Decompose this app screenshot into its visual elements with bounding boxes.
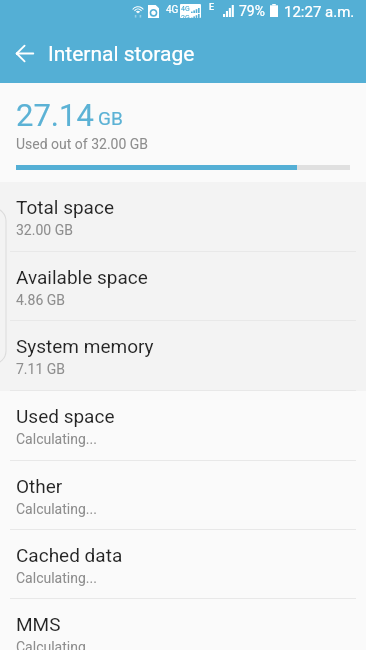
staticText: Total space (16, 196, 114, 218)
staticText: Calculating... (16, 570, 97, 586)
staticText: 2G (181, 14, 190, 18)
staticText: Other (16, 475, 63, 497)
button[interactable]: Used space (0, 391, 366, 461)
button[interactable]: Other (0, 461, 366, 530)
staticText: Cached data (16, 544, 123, 566)
button[interactable]: Total space (0, 182, 366, 252)
staticText: 7.11 GB (16, 361, 66, 377)
staticText: 4G (166, 4, 179, 16)
staticText: Used space (16, 405, 115, 427)
staticText: System memory (16, 335, 154, 357)
button[interactable]: Available space (0, 252, 366, 321)
staticText: 32.00 GB (16, 222, 73, 238)
staticText: Calculating... (16, 501, 97, 517)
staticText: Available space (16, 266, 148, 288)
staticText: 79% (239, 3, 265, 19)
staticText: 12:27 a.m. (284, 3, 355, 21)
staticText: Internal storage (48, 42, 195, 67)
staticText: E (209, 2, 215, 13)
staticText: 4G (181, 5, 190, 13)
button[interactable]: Navigate up (9, 37, 41, 69)
staticText: 4.86 GB (16, 292, 66, 308)
staticText: Calculating... (16, 639, 97, 650)
staticText: Used out of 32.00 GB (16, 136, 149, 152)
staticText: Calculating... (16, 431, 97, 447)
button[interactable]: MMS (0, 599, 366, 650)
staticText: MMS (16, 613, 61, 635)
button[interactable]: Cached data (0, 530, 366, 599)
staticText: 27.14 (16, 97, 94, 133)
button[interactable]: System memory (0, 321, 366, 391)
staticText: GB (98, 107, 123, 129)
